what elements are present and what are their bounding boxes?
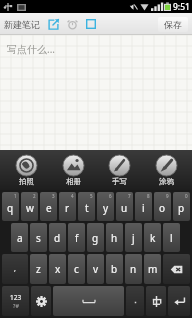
button[interactable]: 新建笔记 — [4, 19, 40, 30]
button[interactable]: 2 — [21, 192, 38, 221]
staticText: b — [111, 262, 118, 276]
staticText: j — [132, 231, 135, 245]
button[interactable]: Checklist — [83, 16, 99, 32]
staticText: c — [74, 262, 79, 276]
button[interactable]: Space — [53, 286, 124, 316]
button[interactable]: b — [106, 254, 123, 284]
button[interactable]: 7 — [116, 192, 133, 221]
button[interactable]: l — [163, 223, 180, 252]
button[interactable]: n — [125, 254, 142, 284]
button[interactable]: 涂鸦 — [145, 150, 187, 190]
button[interactable]: z — [30, 254, 47, 284]
staticText: l — [170, 231, 173, 245]
staticText: ?# — [13, 302, 19, 309]
staticText: z — [36, 262, 41, 276]
button[interactable]: c — [68, 254, 85, 284]
staticText: q — [7, 201, 14, 215]
staticText: 8 — [147, 193, 150, 199]
button[interactable]: 0 — [173, 192, 190, 221]
staticText: 涂鸦 — [159, 177, 174, 186]
staticText: e — [46, 201, 52, 215]
staticText: r — [65, 201, 70, 215]
staticText: 手写 — [112, 177, 127, 186]
button[interactable]: Share — [45, 16, 61, 32]
button[interactable]: 5 — [78, 192, 95, 221]
staticText: p — [178, 201, 185, 215]
staticText: i — [142, 201, 145, 215]
button[interactable]: Period — [126, 286, 144, 316]
button[interactable]: , — [2, 254, 28, 284]
button[interactable]: s — [30, 223, 47, 252]
staticText: u — [121, 201, 128, 215]
staticText: 1 — [14, 193, 17, 199]
button[interactable]: k — [144, 223, 161, 252]
button[interactable]: m — [144, 254, 161, 284]
staticText: 123 — [10, 293, 22, 302]
staticText: 保存 — [164, 19, 182, 30]
staticText: 相册 — [66, 177, 81, 186]
staticText: h — [111, 231, 118, 245]
staticText: g — [92, 231, 99, 245]
staticText: y — [103, 201, 109, 215]
staticText: x — [55, 262, 61, 276]
staticText: w — [26, 201, 34, 215]
button[interactable]: 1 — [2, 192, 19, 221]
staticText: 4 — [71, 193, 74, 199]
button[interactable]: 相册 — [52, 150, 94, 190]
button[interactable]: 保存 — [158, 17, 188, 32]
button[interactable]: Enter — [168, 286, 190, 316]
staticText: n — [130, 262, 137, 276]
staticText: d — [54, 231, 61, 245]
button[interactable]: Settings — [31, 286, 51, 316]
staticText: 5 — [90, 193, 93, 199]
staticText: v — [93, 262, 99, 276]
staticText: 3 — [52, 193, 55, 199]
staticText: a — [17, 231, 23, 245]
staticText: f — [75, 231, 79, 245]
button[interactable]: h — [106, 223, 123, 252]
staticText: 0 — [185, 193, 188, 199]
staticText: 拍照 — [19, 177, 34, 186]
button[interactable]: 8 — [135, 192, 152, 221]
button[interactable]: a — [11, 223, 28, 252]
button[interactable]: 写点什么... — [0, 35, 192, 150]
staticText: 6 — [109, 193, 112, 199]
button[interactable]: 手写 — [98, 150, 140, 190]
staticText: 9 — [166, 193, 169, 199]
staticText: 9:51 — [173, 1, 190, 13]
staticText: 2 — [33, 193, 36, 199]
button[interactable]: g — [87, 223, 104, 252]
staticText: o — [159, 201, 166, 215]
staticText: t — [85, 201, 89, 215]
button[interactable]: x — [49, 254, 66, 284]
button[interactable]: 123 — [2, 286, 29, 316]
button[interactable]: v — [87, 254, 104, 284]
button[interactable]: d — [49, 223, 66, 252]
staticText: , — [14, 264, 16, 274]
button[interactable]: 6 — [97, 192, 114, 221]
button[interactable]: 9 — [154, 192, 171, 221]
button[interactable]: 4 — [59, 192, 76, 221]
button[interactable]: j — [125, 223, 142, 252]
button[interactable]: Reminder — [64, 16, 80, 32]
staticText: k — [150, 231, 156, 245]
button[interactable]: Backspace — [163, 254, 190, 284]
button[interactable]: Language — [146, 286, 166, 316]
button[interactable]: f — [68, 223, 85, 252]
button[interactable]: 拍照 — [5, 150, 47, 190]
button[interactable]: 3 — [40, 192, 57, 221]
staticText: m — [148, 262, 158, 276]
staticText: s — [36, 231, 41, 245]
staticText: 7 — [128, 193, 131, 199]
staticText: 写点什么... — [7, 42, 56, 56]
